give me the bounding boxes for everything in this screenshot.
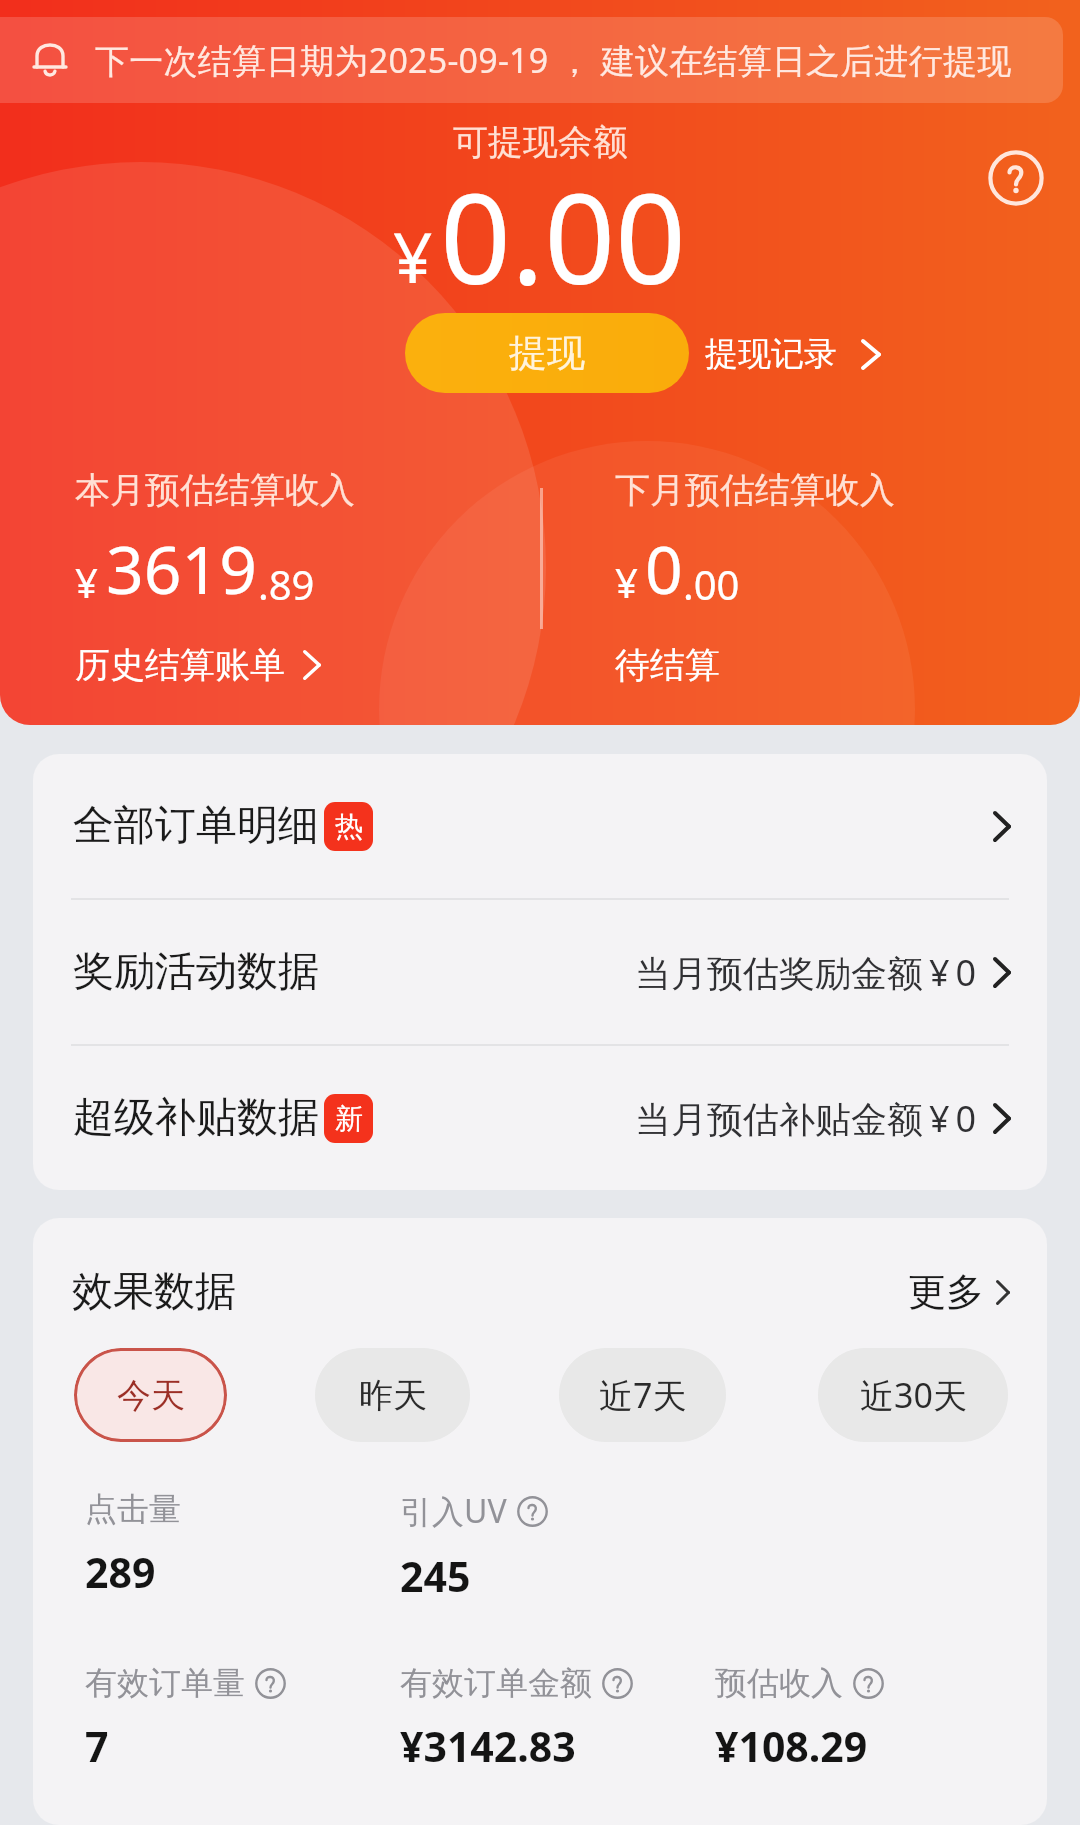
staticText: 近30天 <box>860 1372 967 1418</box>
staticText: 可提现余额 <box>453 120 628 164</box>
staticText: 昨天 <box>359 1374 427 1417</box>
staticText: 当月预估奖励金额 ¥ 0 <box>635 948 977 997</box>
staticText: 超级补贴数据 <box>73 1092 319 1144</box>
staticText: 289 <box>85 1544 156 1600</box>
button[interactable]: 奖励活动数据 <box>33 900 1047 1044</box>
staticText: .89 <box>258 557 315 611</box>
staticText: 点击量 <box>85 1489 181 1529</box>
button[interactable]: 提现 <box>405 313 689 393</box>
button[interactable]: 下一次结算日期为2025-09-19 ， 建议在结算日之后进行提现 <box>0 17 1063 103</box>
staticText: 245 <box>400 1548 471 1604</box>
button[interactable]: Help <box>988 150 1044 206</box>
staticText: 预估收入 <box>715 1663 843 1703</box>
staticText: 引入UV <box>400 1489 507 1533</box>
staticText: ¥ <box>393 209 433 303</box>
staticText: 更多 <box>908 1268 984 1316</box>
staticText: .00 <box>683 557 740 611</box>
staticText: 新 <box>335 1101 363 1136</box>
button[interactable]: 超级补贴数据 <box>33 1046 1047 1190</box>
staticText: 当月预估补贴金额 ¥ 0 <box>635 1094 977 1143</box>
button[interactable]: 近30天 <box>818 1348 1008 1442</box>
staticText: 历史结算账单 <box>75 643 285 687</box>
button[interactable]: 全部订单明细 <box>33 754 1047 898</box>
staticText: ¥3142.83 <box>400 1718 576 1774</box>
staticText: 热 <box>335 809 363 844</box>
staticText: 奖励活动数据 <box>73 946 319 998</box>
staticText: ¥ <box>615 555 638 609</box>
staticText: 提现 <box>509 329 585 377</box>
staticText: 下月预估结算收入 <box>615 468 895 512</box>
staticText: 近7天 <box>599 1372 687 1418</box>
staticText: 待结算 <box>615 643 720 687</box>
staticText: 今天 <box>117 1374 185 1417</box>
staticText: 7 <box>85 1718 109 1774</box>
staticText: 有效订单量 <box>85 1663 245 1703</box>
staticText: 0 <box>645 523 683 613</box>
staticText: 全部订单明细 <box>73 800 319 852</box>
button[interactable]: 待结算 <box>615 643 726 687</box>
staticText: 有效订单金额 <box>400 1663 592 1703</box>
staticText: 本月预估结算收入 <box>75 468 355 512</box>
staticText: ¥ <box>75 555 98 609</box>
staticText: 效果数据 <box>72 1266 236 1318</box>
button[interactable]: 更多 <box>908 1268 1010 1316</box>
button[interactable]: 近7天 <box>559 1348 726 1442</box>
button[interactable]: 昨天 <box>315 1348 470 1442</box>
staticText: 下一次结算日期为2025-09-19 ， 建议在结算日之后进行提现 <box>95 37 1012 83</box>
button[interactable]: 历史结算账单 <box>75 643 327 687</box>
staticText: 提现记录 <box>705 333 837 375</box>
staticText: ¥108.29 <box>715 1718 868 1774</box>
staticText: 3619 <box>106 523 258 613</box>
staticText: 0.00 <box>440 151 687 320</box>
button[interactable]: 提现记录 <box>705 333 891 375</box>
button[interactable]: 今天 <box>74 1348 227 1442</box>
